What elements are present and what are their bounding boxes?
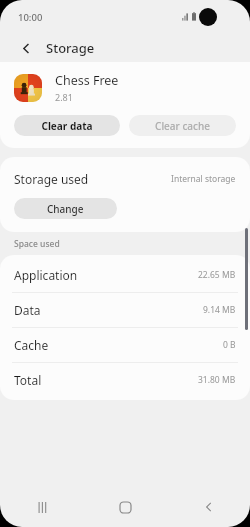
staticText: 9.14 MB (203, 304, 236, 316)
staticText: Chess Free (55, 72, 119, 89)
button[interactable]: Recents (0, 487, 84, 527)
button[interactable]: Change (14, 198, 117, 219)
button[interactable]: Data (0, 293, 250, 328)
button[interactable]: Home (84, 487, 167, 527)
staticText: Clear cache (155, 119, 210, 133)
staticText: 2.81 (55, 91, 73, 103)
staticText: 22.65 MB (198, 269, 236, 281)
staticText: Clear data (41, 119, 93, 133)
staticText: 31.80 MB (198, 374, 236, 386)
button[interactable]: Clear data (14, 115, 120, 136)
staticText: Space used (14, 238, 60, 250)
staticText: Data (14, 302, 41, 318)
staticText: Internal storage (171, 173, 236, 185)
button[interactable]: Back (14, 36, 38, 60)
button[interactable]: Back (167, 487, 250, 527)
staticText: Change (47, 202, 84, 216)
staticText: 10:00 (18, 11, 43, 24)
button[interactable]: Application (0, 258, 250, 293)
button[interactable]: Clear cache (129, 115, 236, 136)
staticText: Storage (46, 39, 95, 57)
button[interactable]: Storage used (0, 171, 250, 187)
staticText: Application (14, 267, 78, 283)
button[interactable]: Total (0, 363, 250, 397)
staticText: Total (14, 372, 42, 388)
button[interactable]: Cache (0, 328, 250, 363)
staticText: Cache (14, 337, 49, 353)
staticText: Storage used (14, 171, 89, 187)
staticText: 0 B (223, 339, 236, 351)
